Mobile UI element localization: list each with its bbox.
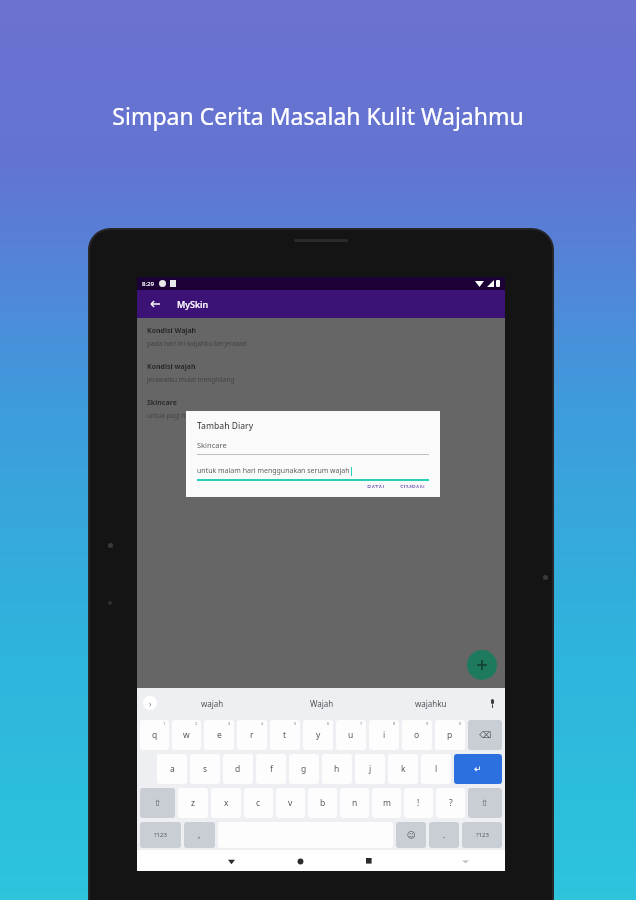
button[interactable]: b <box>308 788 337 818</box>
staticText: k <box>401 763 406 775</box>
staticText: pada hari ini wajahku berjerawat <box>147 339 248 348</box>
staticText: p <box>447 729 453 741</box>
button[interactable]: BATAL <box>363 481 390 490</box>
button[interactable]: z <box>178 788 208 818</box>
staticText: q <box>152 729 158 741</box>
staticText: z <box>191 797 195 809</box>
button[interactable]: More <box>143 696 157 710</box>
staticText: wajahku <box>415 698 447 709</box>
staticText: Kondisi wajah <box>147 362 196 372</box>
button[interactable]: w <box>172 720 201 750</box>
staticText: MySkin <box>177 298 209 310</box>
staticText: l <box>435 763 438 775</box>
button[interactable]: d <box>223 754 253 784</box>
button[interactable]: h <box>322 754 352 784</box>
staticText: ⌫ <box>479 730 492 740</box>
staticText: e <box>217 729 222 741</box>
button[interactable]: r <box>237 720 267 750</box>
staticText: SIMPAN <box>400 483 425 488</box>
button[interactable]: . <box>429 822 459 848</box>
staticText: t <box>283 729 287 741</box>
button[interactable]: Backspace <box>468 720 502 750</box>
button[interactable]: s <box>190 754 220 784</box>
staticText: 8:29 <box>142 280 154 288</box>
button[interactable]: wajahku <box>376 688 485 718</box>
staticText: 5 <box>294 721 297 726</box>
button[interactable]: Add diary <box>467 650 497 680</box>
staticText: . <box>443 829 446 841</box>
button[interactable]: c <box>244 788 273 818</box>
staticText: o <box>414 729 420 741</box>
button[interactable]: ? <box>436 788 465 818</box>
staticText: y <box>316 729 321 741</box>
staticText: ?123 <box>476 831 489 839</box>
button[interactable]: i <box>369 720 399 750</box>
staticText: i <box>383 729 386 741</box>
staticText: Simpan Cerita Masalah Kulit Wajahmu <box>112 100 524 131</box>
button[interactable]: u <box>336 720 366 750</box>
button[interactable]: p <box>435 720 465 750</box>
staticText: ↵ <box>474 764 482 774</box>
button[interactable]: g <box>289 754 319 784</box>
button[interactable]: ?123 <box>140 822 181 848</box>
staticText: 0 <box>459 721 462 726</box>
staticText: BATAL <box>367 483 386 488</box>
button[interactable]: y <box>303 720 333 750</box>
staticText: d <box>235 763 241 775</box>
button[interactable]: k <box>388 754 418 784</box>
staticText: 4 <box>261 721 264 726</box>
staticText: , <box>198 829 201 841</box>
button[interactable]: q <box>140 720 169 750</box>
button[interactable]: Skincare <box>197 440 429 455</box>
staticText: jerawatku mulai menghilang <box>147 375 235 384</box>
button[interactable]: untuk malam hari menggunakan serum wajah <box>197 466 429 481</box>
button[interactable]: m <box>372 788 401 818</box>
staticText: v <box>288 797 293 809</box>
staticText: ?123 <box>154 831 167 839</box>
button[interactable]: hide <box>458 854 472 868</box>
staticText: ! <box>417 797 420 809</box>
staticText: Kondisi Wajah <box>147 326 197 336</box>
staticText: untuk malam hari menggunakan serum wajah <box>197 466 350 476</box>
staticText: b <box>320 797 326 809</box>
button[interactable]: Shift <box>468 788 502 818</box>
staticText: 2 <box>195 721 198 726</box>
staticText: Skincare <box>197 440 227 450</box>
button[interactable]: , <box>184 822 215 848</box>
button[interactable]: l <box>421 754 451 784</box>
button[interactable]: n <box>340 788 369 818</box>
button[interactable]: Back <box>147 296 163 312</box>
staticText: Wajah <box>310 698 334 709</box>
staticText: Tambah Diary <box>197 420 254 432</box>
button[interactable]: home <box>293 854 307 868</box>
button[interactable]: o <box>402 720 432 750</box>
staticText: untuk pagi hari menggunakan sunscreen ag… <box>147 411 384 420</box>
button[interactable]: Shift <box>140 788 175 818</box>
button[interactable]: wajah <box>157 688 267 718</box>
button[interactable]: ?123 <box>462 822 502 848</box>
button[interactable]: Enter <box>454 754 502 784</box>
button[interactable]: SIMPAN <box>396 481 429 490</box>
button[interactable]: a <box>157 754 187 784</box>
button[interactable]: t <box>270 720 300 750</box>
staticText: m <box>383 797 391 809</box>
staticText: r <box>250 729 254 741</box>
button[interactable]: j <box>355 754 385 784</box>
staticText: 3 <box>228 721 231 726</box>
button[interactable]: x <box>211 788 241 818</box>
staticText: c <box>256 797 261 809</box>
button[interactable]: recents <box>362 854 376 868</box>
staticText: wajah <box>201 698 224 709</box>
button[interactable]: Wajah <box>267 688 376 718</box>
staticText: Skincare <box>147 398 177 408</box>
button[interactable]: f <box>256 754 286 784</box>
button[interactable]: ! <box>404 788 433 818</box>
staticText: n <box>352 797 358 809</box>
button[interactable]: Voice input <box>485 696 499 710</box>
button[interactable]: back <box>224 854 238 868</box>
button[interactable]: v <box>276 788 305 818</box>
button[interactable]: e <box>204 720 234 750</box>
staticText: j <box>369 763 372 775</box>
button[interactable]: ☺ <box>396 822 426 848</box>
